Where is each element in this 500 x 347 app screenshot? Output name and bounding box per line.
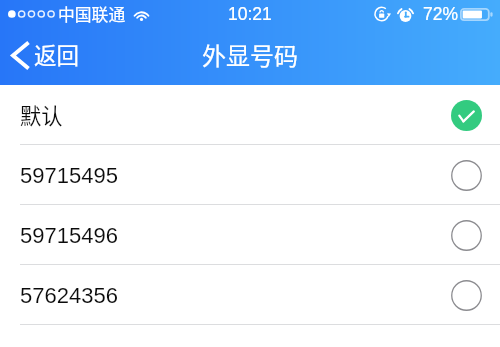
button[interactable]: 默认: [0, 85, 500, 145]
button[interactable]: 59715495: [0, 145, 500, 205]
staticText: 59715496: [20, 223, 118, 248]
other: Alarm: [399, 7, 412, 22]
other: Back: [11, 41, 29, 70]
staticText: 59715495: [20, 163, 118, 188]
button[interactable]: 59715496: [0, 205, 500, 265]
staticText: 外显号码: [202, 37, 298, 72]
staticText: 返回: [34, 38, 80, 71]
staticText: 72%: [423, 4, 459, 24]
staticText: 57624356: [20, 283, 118, 308]
other: Rotation lock: [375, 6, 391, 22]
button[interactable]: Back: [0, 29, 94, 85]
button[interactable]: 57624356: [0, 265, 500, 325]
staticText: 中国联通: [58, 2, 126, 26]
other: Wi-Fi: [132, 7, 151, 22]
staticText: 默认: [20, 99, 63, 130]
staticText: 10:21: [228, 4, 272, 24]
